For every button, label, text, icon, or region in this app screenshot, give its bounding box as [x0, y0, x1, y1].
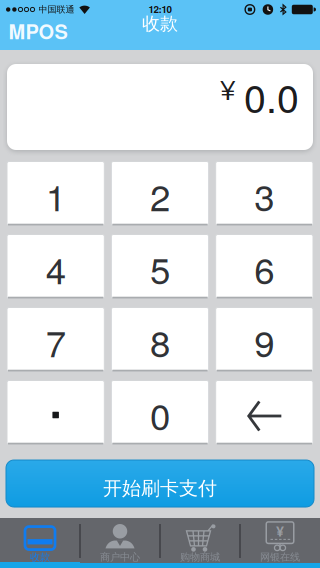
button[interactable]: 商户中心	[80, 518, 160, 563]
staticText: 中国联通	[39, 4, 75, 15]
staticText: 9	[254, 315, 274, 368]
staticText: 商户中心	[100, 551, 140, 564]
staticText: 0	[150, 388, 170, 441]
staticText: 2	[150, 169, 170, 222]
button[interactable]: 1	[7, 161, 104, 225]
staticText: 收款	[142, 12, 178, 35]
staticText: 5	[150, 242, 170, 295]
button[interactable]: 7	[7, 307, 104, 371]
button[interactable]: 0	[111, 380, 209, 444]
staticText: 3	[254, 169, 274, 222]
button[interactable]: 开始刷卡支付	[6, 460, 314, 507]
staticText: 开始刷卡支付	[103, 476, 217, 500]
staticText: 4	[46, 242, 66, 295]
staticText: 7	[46, 315, 66, 368]
staticText: 12:10	[148, 2, 171, 16]
button[interactable]: 2	[111, 161, 209, 225]
staticText: MPOS	[8, 17, 67, 45]
staticText: 6	[254, 242, 274, 295]
button[interactable]: 6	[216, 234, 313, 298]
staticText: 1	[46, 169, 66, 222]
button[interactable]: 删除	[216, 380, 313, 444]
staticText: 网银在线	[260, 551, 300, 564]
staticText: 0.0	[244, 68, 299, 124]
staticText: 收款	[30, 551, 50, 564]
button[interactable]: 9	[216, 307, 313, 371]
button[interactable]: 小数点	[7, 380, 104, 444]
staticText: ¥	[276, 521, 284, 541]
button[interactable]: 购物商城	[160, 518, 240, 563]
button[interactable]: 8	[111, 307, 209, 371]
staticText: 购物商城	[180, 551, 220, 564]
button[interactable]: 收款	[0, 518, 80, 563]
button[interactable]: ¥	[240, 518, 320, 563]
button[interactable]: 4	[7, 234, 104, 298]
staticText: ¥	[220, 68, 236, 108]
staticText: 8	[150, 315, 170, 368]
button[interactable]: 5	[111, 234, 209, 298]
button[interactable]: 3	[216, 161, 313, 225]
